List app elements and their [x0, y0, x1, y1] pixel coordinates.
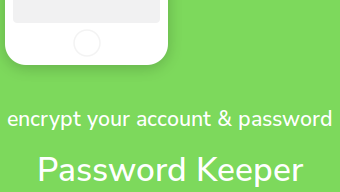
- staticText: encrypt your account & password: [7, 104, 333, 134]
- staticText: Password Keeper: [37, 147, 303, 192]
